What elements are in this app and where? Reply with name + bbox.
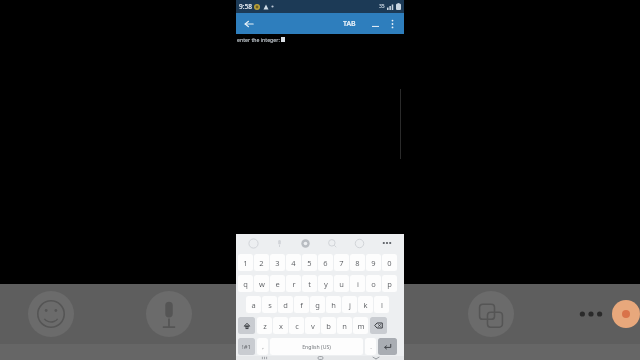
- staticText: 3: [275, 258, 280, 268]
- staticText: b: [326, 321, 331, 331]
- staticText: 1: [243, 258, 248, 268]
- button[interactable]: TAB: [341, 19, 358, 29]
- button[interactable]: 2: [254, 254, 269, 271]
- button[interactable]: x: [273, 317, 288, 334]
- button[interactable]: h: [326, 296, 341, 313]
- button[interactable]: Translate: [468, 291, 514, 337]
- staticText: English (US): [302, 343, 331, 350]
- staticText: i: [357, 279, 359, 289]
- button[interactable]: p: [382, 275, 397, 292]
- staticText: 2: [259, 258, 264, 268]
- button[interactable]: q: [238, 275, 253, 292]
- button[interactable]: Recents: [236, 356, 292, 360]
- button[interactable]: Minimize: [368, 17, 382, 31]
- staticText: w: [259, 279, 265, 289]
- staticText: a: [251, 300, 256, 310]
- button[interactable]: Settings: [292, 234, 319, 252]
- staticText: 5: [307, 258, 312, 268]
- button[interactable]: w: [254, 275, 269, 292]
- button[interactable]: f: [294, 296, 309, 313]
- button[interactable]: !#1: [238, 338, 255, 355]
- button[interactable]: 1: [238, 254, 253, 271]
- button[interactable]: More: [576, 299, 606, 329]
- staticText: 7: [339, 258, 344, 268]
- button[interactable]: v: [305, 317, 320, 334]
- button[interactable]: Back: [241, 16, 257, 32]
- staticText: 4: [291, 258, 296, 268]
- button[interactable]: Translate: [346, 234, 373, 252]
- staticText: ,: [262, 343, 264, 351]
- button[interactable]: l: [374, 296, 389, 313]
- staticText: d: [283, 300, 288, 310]
- button[interactable]: g: [310, 296, 325, 313]
- button[interactable]: 9: [366, 254, 381, 271]
- button[interactable]: Microphone: [146, 291, 192, 337]
- staticText: 0: [387, 258, 392, 268]
- staticText: e: [275, 279, 280, 289]
- staticText: x: [279, 321, 283, 331]
- button[interactable]: 7: [334, 254, 349, 271]
- button[interactable]: Search: [319, 234, 346, 252]
- staticText: k: [363, 300, 368, 310]
- button[interactable]: a: [246, 296, 261, 313]
- button[interactable]: English (US): [270, 338, 363, 355]
- staticText: o: [371, 279, 376, 289]
- staticText: 6: [323, 258, 328, 268]
- staticText: n: [342, 321, 347, 331]
- button[interactable]: y: [318, 275, 333, 292]
- button[interactable]: More options: [385, 17, 399, 31]
- button[interactable]: Key: [378, 338, 397, 355]
- staticText: g: [315, 300, 320, 310]
- staticText: y: [324, 279, 328, 289]
- button[interactable]: Key: [238, 317, 255, 334]
- button[interactable]: 8: [350, 254, 365, 271]
- staticText: l: [381, 300, 383, 310]
- staticText: z: [263, 321, 267, 331]
- button[interactable]: d: [278, 296, 293, 313]
- staticText: j: [349, 300, 351, 310]
- button[interactable]: u: [334, 275, 349, 292]
- staticText: !#1: [242, 343, 251, 351]
- button[interactable]: i: [350, 275, 365, 292]
- button[interactable]: Voice input: [266, 234, 292, 252]
- staticText: 8: [355, 258, 360, 268]
- staticText: enter the integer:: [237, 36, 280, 43]
- staticText: f: [300, 300, 303, 310]
- button[interactable]: 0: [382, 254, 397, 271]
- button[interactable]: Emoji: [28, 291, 74, 337]
- staticText: r: [292, 279, 296, 289]
- button[interactable]: 5: [302, 254, 317, 271]
- button[interactable]: o: [366, 275, 381, 292]
- button[interactable]: 3: [270, 254, 285, 271]
- button[interactable]: s: [262, 296, 277, 313]
- button[interactable]: Key: [370, 317, 387, 334]
- button[interactable]: .: [365, 338, 376, 355]
- button[interactable]: k: [358, 296, 373, 313]
- staticText: 9:58: [239, 2, 252, 11]
- button[interactable]: m: [353, 317, 368, 334]
- staticText: h: [331, 300, 336, 310]
- staticText: u: [339, 279, 344, 289]
- button[interactable]: j: [342, 296, 357, 313]
- staticText: c: [295, 321, 299, 331]
- button[interactable]: c: [289, 317, 304, 334]
- staticText: v: [311, 321, 315, 331]
- button[interactable]: t: [302, 275, 317, 292]
- button[interactable]: z: [257, 317, 272, 334]
- staticText: .: [370, 343, 372, 351]
- staticText: p: [387, 279, 392, 289]
- button[interactable]: e: [270, 275, 285, 292]
- button[interactable]: 6: [318, 254, 333, 271]
- button[interactable]: Hide keyboard: [348, 356, 404, 360]
- button[interactable]: n: [337, 317, 352, 334]
- button[interactable]: 4: [286, 254, 301, 271]
- staticText: q: [243, 279, 248, 289]
- button[interactable]: More keyboard options: [373, 234, 400, 252]
- button[interactable]: b: [321, 317, 336, 334]
- staticText: 35: [379, 3, 385, 10]
- button[interactable]: r: [286, 275, 301, 292]
- staticText: TAB: [343, 19, 356, 29]
- button[interactable]: ,: [257, 338, 268, 355]
- button[interactable]: Home: [292, 356, 348, 360]
- button[interactable]: Stickers: [240, 234, 266, 252]
